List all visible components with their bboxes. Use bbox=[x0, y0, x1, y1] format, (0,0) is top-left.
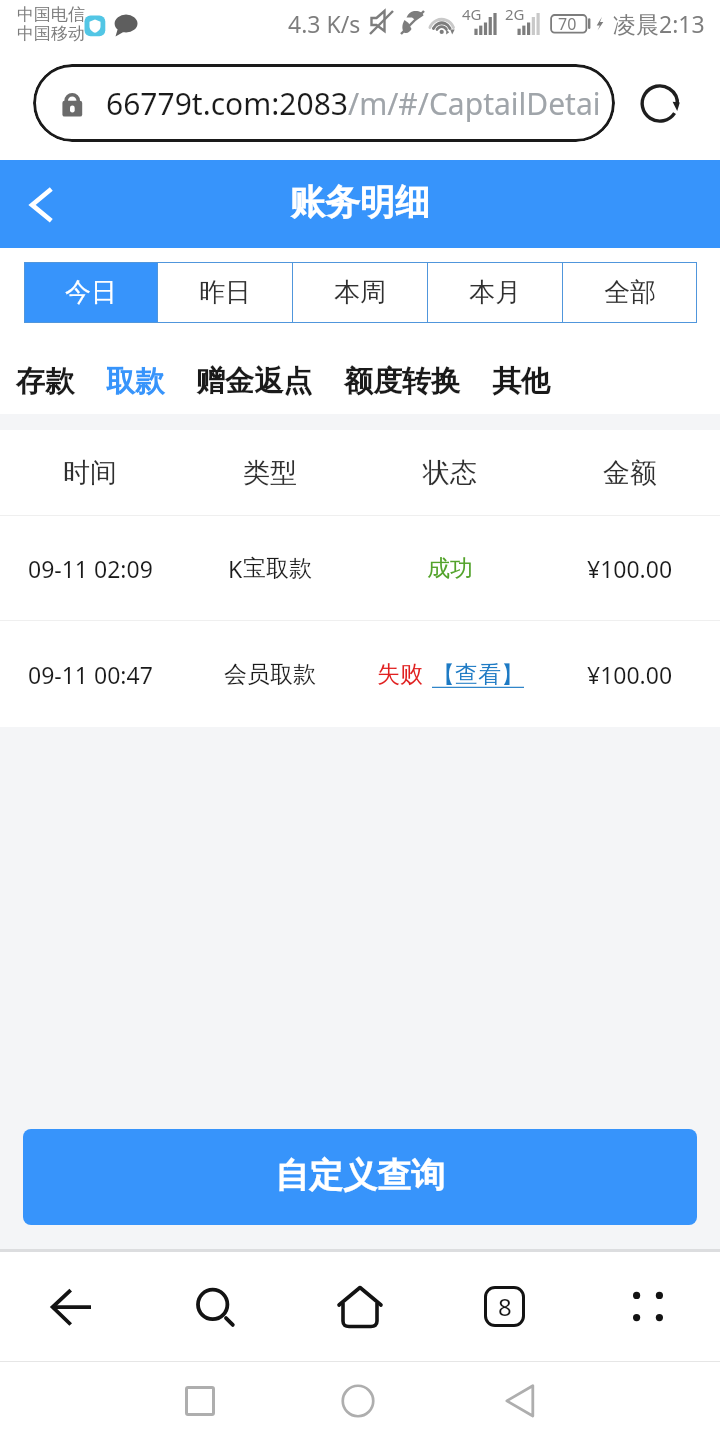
button[interactable]: 09-11 02:09 bbox=[0, 516, 720, 620]
staticText: 本月 bbox=[469, 276, 521, 309]
staticText: 09-11 02:09 bbox=[28, 553, 153, 584]
staticText: 会员取款 bbox=[224, 660, 316, 689]
staticText: 赠金返点 bbox=[196, 363, 312, 400]
staticText: 8 bbox=[498, 1290, 512, 1323]
button[interactable]: 本月 bbox=[428, 262, 562, 323]
button[interactable]: 其他 bbox=[492, 363, 550, 400]
staticText: 昨日 bbox=[199, 276, 251, 309]
button[interactable]: 存款 bbox=[16, 363, 74, 400]
staticText: 66779t.com:2083 bbox=[106, 83, 348, 124]
button[interactable]: 赠金返点 bbox=[196, 363, 312, 400]
staticText: 账务明细 bbox=[290, 180, 430, 224]
staticText: 今日 bbox=[65, 276, 117, 309]
button[interactable]: 额度转换 bbox=[344, 363, 460, 400]
button[interactable]: Tabs bbox=[432, 1252, 576, 1361]
button[interactable]: Home bbox=[318, 1362, 398, 1440]
button[interactable]: Recents bbox=[160, 1362, 240, 1440]
staticText: /m/#/CaptailDetai bbox=[348, 83, 601, 124]
button[interactable]: 自定义查询 bbox=[23, 1129, 697, 1225]
staticText: 失败 bbox=[377, 660, 423, 689]
button[interactable]: More bbox=[576, 1252, 720, 1361]
button[interactable]: 全部 bbox=[563, 262, 697, 323]
staticText: 09-11 00:47 bbox=[28, 659, 153, 690]
staticText: 中国移动 bbox=[17, 23, 85, 44]
staticText: 状态 bbox=[423, 456, 477, 490]
button[interactable]: Search bbox=[144, 1252, 288, 1361]
button[interactable]: 昨日 bbox=[158, 262, 292, 323]
staticText: ¥100.00 bbox=[587, 553, 673, 584]
staticText: 额度转换 bbox=[344, 363, 460, 400]
staticText: 4G bbox=[462, 4, 482, 24]
button[interactable]: Home bbox=[288, 1252, 432, 1361]
button[interactable]: 本周 bbox=[293, 262, 427, 323]
staticText: 宝取款 bbox=[243, 554, 312, 583]
button[interactable]: 66779t.com:2083 bbox=[33, 64, 615, 142]
staticText: 金额 bbox=[603, 456, 657, 490]
staticText: 自定义查询 bbox=[275, 1154, 445, 1197]
staticText: 存款 bbox=[16, 363, 74, 400]
staticText: 成功 bbox=[427, 554, 473, 583]
staticText: K bbox=[228, 553, 243, 584]
staticText: 【查看】 bbox=[432, 660, 524, 689]
staticText: 4.3 K/s bbox=[288, 8, 361, 39]
staticText: 70 bbox=[558, 13, 577, 35]
staticText: 中国电信 bbox=[17, 4, 85, 25]
button[interactable]: Back bbox=[480, 1362, 560, 1440]
staticText: 2G bbox=[505, 4, 525, 24]
staticText: ¥100.00 bbox=[587, 659, 673, 690]
staticText: 全部 bbox=[604, 276, 656, 309]
button[interactable]: 今日 bbox=[24, 262, 157, 323]
staticText: 取款 bbox=[106, 363, 164, 400]
staticText: 其他 bbox=[492, 363, 550, 400]
button[interactable]: 取款 bbox=[106, 363, 164, 400]
staticText: 类型 bbox=[243, 456, 297, 490]
button[interactable]: Back bbox=[0, 160, 86, 248]
staticText: 时间 bbox=[63, 456, 117, 490]
button[interactable]: 09-11 00:47 bbox=[0, 621, 720, 727]
staticText: 凌晨2:13 bbox=[613, 8, 705, 39]
button[interactable]: Back bbox=[0, 1252, 144, 1361]
staticText: 本周 bbox=[334, 276, 386, 309]
